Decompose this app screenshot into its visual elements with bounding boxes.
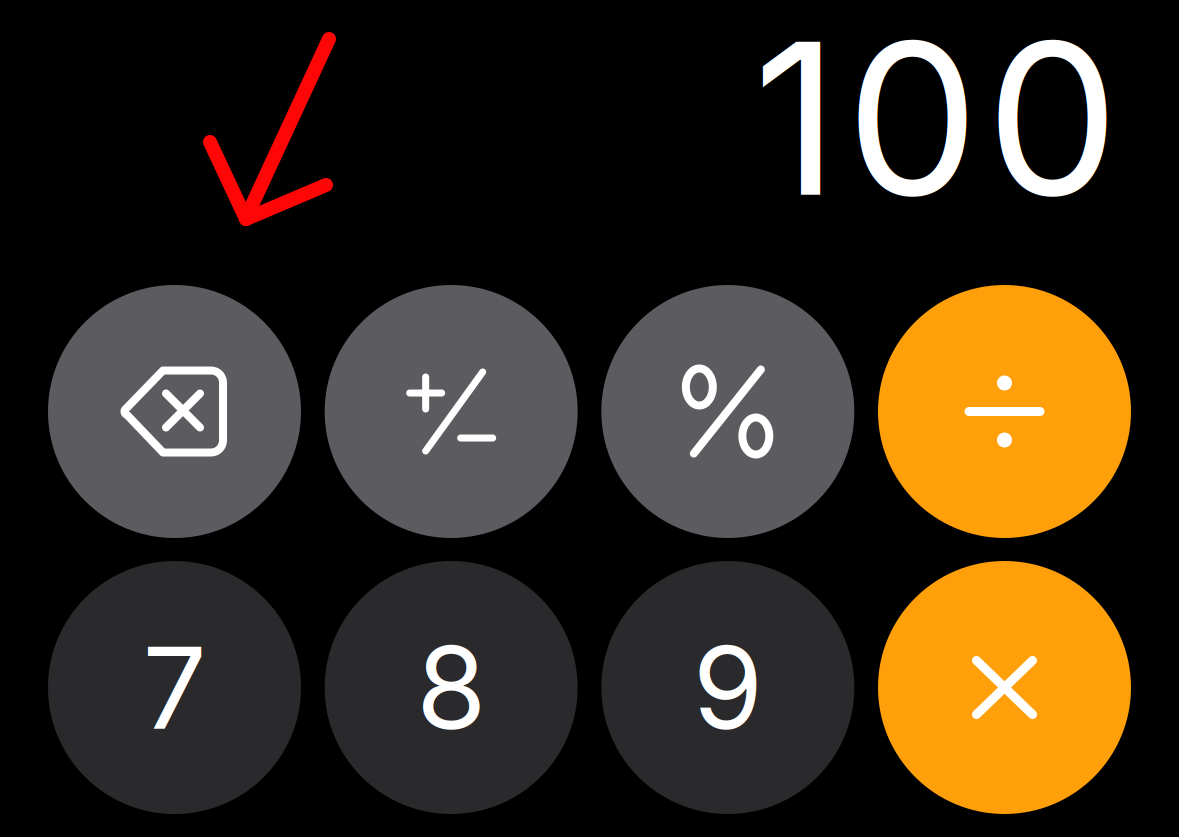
button[interactable]: 9	[601, 561, 854, 814]
button[interactable]: 7	[48, 561, 301, 814]
button[interactable]: Delete	[48, 285, 301, 538]
staticText: 8	[416, 619, 486, 756]
button[interactable]: Toggle sign	[325, 285, 578, 538]
button[interactable]: Multiply	[878, 561, 1131, 814]
staticText: 7	[142, 619, 206, 756]
staticText: 100	[753, 0, 1119, 245]
staticText: 9	[693, 619, 763, 756]
button[interactable]: Percent	[601, 285, 854, 538]
button[interactable]: 8	[325, 561, 578, 814]
button[interactable]: Divide	[878, 285, 1131, 538]
